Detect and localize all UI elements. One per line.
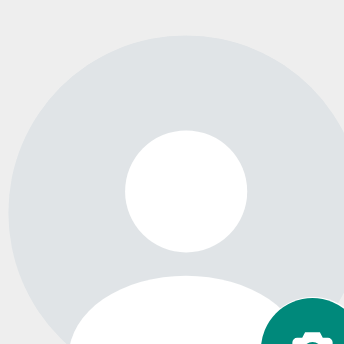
- button[interactable]: Change profile photo: [260, 297, 344, 344]
- button[interactable]: Profile photo: [8, 35, 344, 344]
